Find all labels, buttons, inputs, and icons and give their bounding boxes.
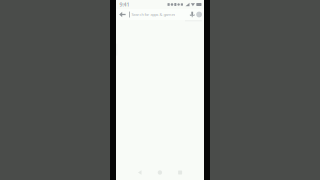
button[interactable]: Back bbox=[135, 168, 144, 177]
button[interactable]: Voice search bbox=[187, 12, 196, 17]
staticText: 9:41 bbox=[119, 1, 129, 8]
button[interactable]: Recent apps bbox=[176, 168, 185, 177]
button[interactable]: Account bbox=[196, 12, 204, 17]
button[interactable]: Back bbox=[116, 11, 129, 18]
staticText: Search for apps & games bbox=[131, 12, 175, 17]
button[interactable]: Home bbox=[155, 168, 165, 177]
